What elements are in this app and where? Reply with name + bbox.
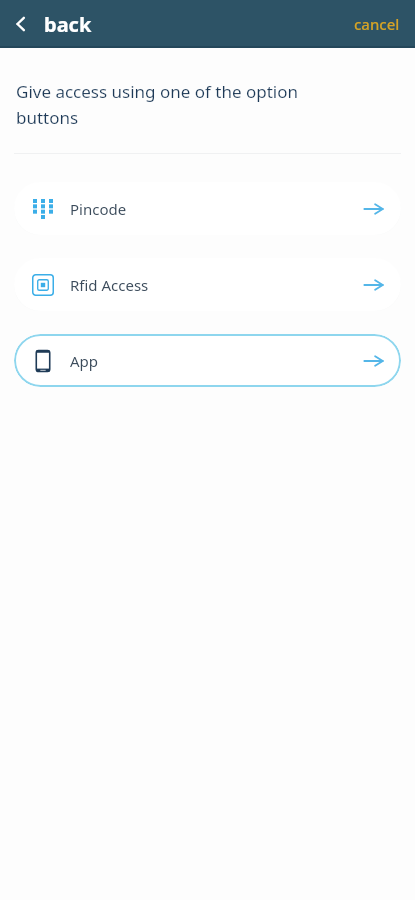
staticText: cancel bbox=[354, 14, 400, 34]
button[interactable]: back bbox=[0, 0, 106, 48]
staticText: App bbox=[70, 351, 99, 371]
button[interactable]: Pincode keypad bbox=[14, 182, 401, 235]
staticText: back bbox=[44, 11, 92, 38]
staticText: Pincode bbox=[70, 199, 127, 219]
button[interactable]: App bbox=[14, 334, 401, 387]
other: Rfid Access bbox=[32, 274, 54, 296]
button[interactable]: cancel bbox=[339, 0, 415, 48]
other: App bbox=[31, 349, 55, 373]
other: Pincode keypad bbox=[33, 199, 53, 219]
button[interactable]: Rfid Access bbox=[14, 258, 401, 311]
staticText: Rfid Access bbox=[70, 275, 149, 295]
staticText: Give access using one of the option butt… bbox=[16, 80, 355, 129]
